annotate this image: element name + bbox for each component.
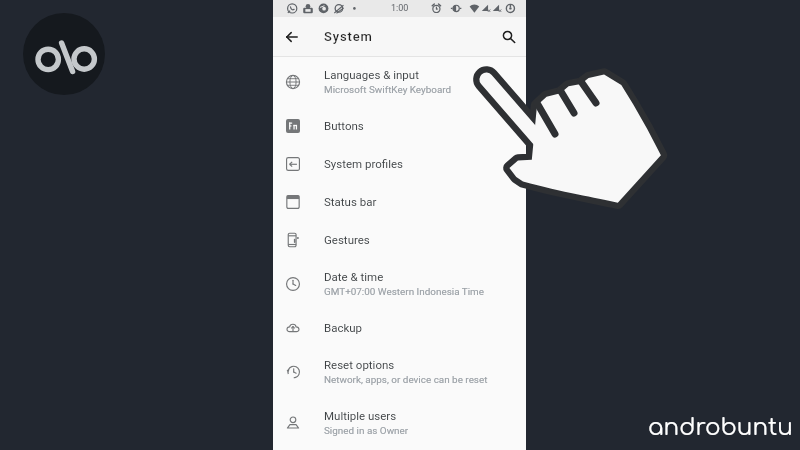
staticText: System xyxy=(324,29,373,44)
staticText: Backup xyxy=(324,321,363,334)
button[interactable]: Gestures xyxy=(273,221,526,259)
staticText: Multiple users xyxy=(324,409,397,422)
staticText: Microsoft SwiftKey Keyboard xyxy=(324,84,452,96)
staticText: Signed in as Owner xyxy=(324,425,409,437)
button[interactable]: Status bar xyxy=(273,183,526,221)
staticText: Date & time xyxy=(324,270,384,283)
staticText: Languages & input xyxy=(324,68,419,81)
button[interactable]: Back xyxy=(278,23,306,51)
button[interactable]: Buttons xyxy=(273,107,526,145)
staticText: Reset options xyxy=(324,358,395,371)
staticText: 1:00 xyxy=(391,3,409,14)
staticText: Buttons xyxy=(324,119,364,132)
button[interactable]: Search xyxy=(494,23,522,51)
button[interactable]: Reset options xyxy=(273,347,526,397)
button[interactable]: System profiles xyxy=(273,145,526,183)
staticText: System profiles xyxy=(324,157,404,170)
button[interactable]: Languages & input xyxy=(273,57,526,107)
staticText: GMT+07:00 Western Indonesia Time xyxy=(324,286,485,298)
staticText: Status bar xyxy=(324,195,377,208)
staticText: Gestures xyxy=(324,233,370,246)
other: Tap xyxy=(475,65,675,225)
button[interactable]: Backup xyxy=(273,309,526,347)
button[interactable]: Multiple users xyxy=(273,398,526,448)
staticText: androbuntu xyxy=(648,415,793,441)
button[interactable]: Date & time xyxy=(273,259,526,309)
staticText: Network, apps, or device can be reset xyxy=(324,374,488,386)
